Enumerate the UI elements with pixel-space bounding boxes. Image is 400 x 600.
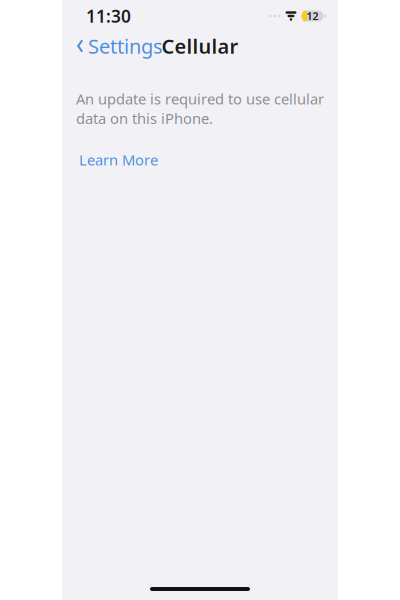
button[interactable]: Learn More bbox=[79, 145, 158, 174]
staticText: Settings bbox=[88, 33, 163, 59]
staticText: Cellular bbox=[161, 33, 238, 59]
button[interactable]: Settings bbox=[62, 27, 163, 65]
staticText: 12 bbox=[306, 9, 318, 23]
staticText: Learn More bbox=[79, 150, 158, 169]
staticText: An update is required to use cellular da… bbox=[76, 89, 324, 128]
staticText: 11:30 bbox=[86, 4, 131, 27]
